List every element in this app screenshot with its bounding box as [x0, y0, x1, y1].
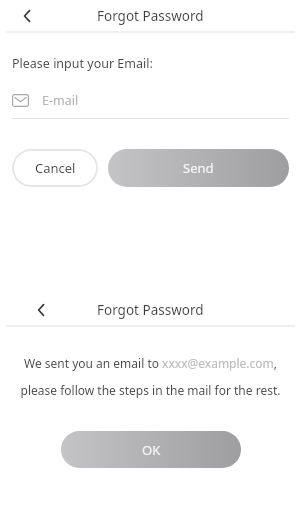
button[interactable]: Send [108, 149, 289, 187]
staticText: Forgot Password [97, 7, 204, 25]
staticText: OK [142, 441, 161, 459]
staticText: Please input your Email: [12, 55, 153, 72]
staticText: Cancel [35, 159, 76, 177]
staticText: We sent you an email to xxxx@example.com… [14, 355, 287, 399]
staticText: Forgot Password [97, 301, 204, 319]
staticText: E-mail [42, 92, 79, 109]
button[interactable]: OK [61, 431, 241, 468]
button[interactable]: E-mail [12, 92, 289, 109]
staticText: Send [183, 159, 214, 177]
button[interactable]: Back [26, 295, 56, 325]
button[interactable]: Cancel [12, 149, 98, 187]
button[interactable]: Back [12, 1, 42, 31]
